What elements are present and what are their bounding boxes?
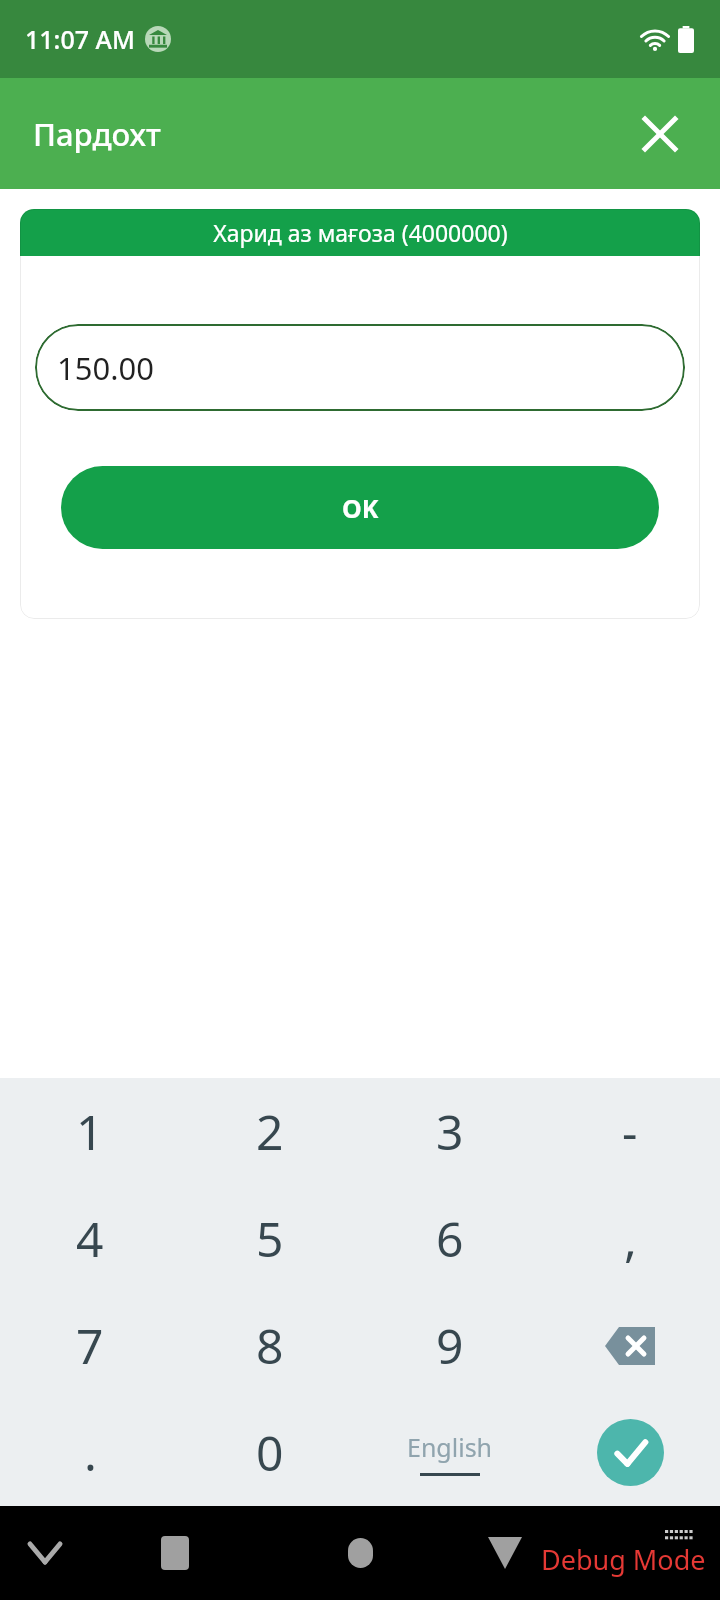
button[interactable]: 2 bbox=[180, 1078, 360, 1185]
staticText: 2 bbox=[256, 1099, 284, 1164]
button[interactable]: 3 bbox=[360, 1078, 540, 1185]
staticText: , bbox=[624, 1206, 637, 1271]
staticText: 150.00 bbox=[57, 347, 154, 389]
button[interactable]: Back bbox=[480, 1528, 530, 1578]
button[interactable]: Switch keyboard bbox=[660, 1518, 700, 1558]
button[interactable]: 9 bbox=[360, 1292, 540, 1399]
button[interactable]: Confirm bbox=[540, 1399, 720, 1506]
staticText: 4 bbox=[76, 1206, 104, 1271]
staticText: 8 bbox=[256, 1313, 284, 1378]
staticText: 0 bbox=[256, 1420, 284, 1485]
staticText: - bbox=[622, 1099, 638, 1164]
staticText: 3 bbox=[436, 1099, 464, 1164]
staticText: 9 bbox=[436, 1313, 464, 1378]
staticText: 1 bbox=[76, 1099, 104, 1164]
staticText: Харид аз мағоза (4000000) bbox=[213, 217, 508, 248]
button[interactable]: 150.00 bbox=[35, 324, 685, 411]
button[interactable]: Recents bbox=[150, 1528, 200, 1578]
staticText: 6 bbox=[436, 1206, 464, 1271]
staticText: Debug Mode bbox=[541, 1541, 706, 1578]
button[interactable]: , bbox=[540, 1185, 720, 1292]
button[interactable]: 7 bbox=[0, 1292, 180, 1399]
button[interactable]: 4 bbox=[0, 1185, 180, 1292]
button[interactable]: 6 bbox=[360, 1185, 540, 1292]
button[interactable]: Home bbox=[335, 1528, 385, 1578]
button[interactable]: Backspace bbox=[540, 1292, 720, 1399]
button[interactable]: 0 bbox=[180, 1399, 360, 1506]
button[interactable]: Close bbox=[636, 110, 684, 158]
button[interactable]: 8 bbox=[180, 1292, 360, 1399]
button[interactable]: 1 bbox=[0, 1078, 180, 1185]
button[interactable]: 5 bbox=[180, 1185, 360, 1292]
button[interactable]: English bbox=[360, 1399, 540, 1506]
staticText: Пардохт bbox=[33, 113, 161, 155]
button[interactable]: Hide keyboard bbox=[20, 1528, 70, 1578]
staticText: . bbox=[84, 1420, 97, 1485]
button[interactable]: OK bbox=[61, 466, 659, 549]
button[interactable]: - bbox=[540, 1078, 720, 1185]
button[interactable]: . bbox=[0, 1399, 180, 1506]
staticText: English bbox=[407, 1430, 493, 1464]
staticText: 7 bbox=[76, 1313, 104, 1378]
staticText: 11:07 AM bbox=[25, 22, 135, 56]
staticText: OK bbox=[342, 491, 379, 525]
staticText: 5 bbox=[256, 1206, 284, 1271]
